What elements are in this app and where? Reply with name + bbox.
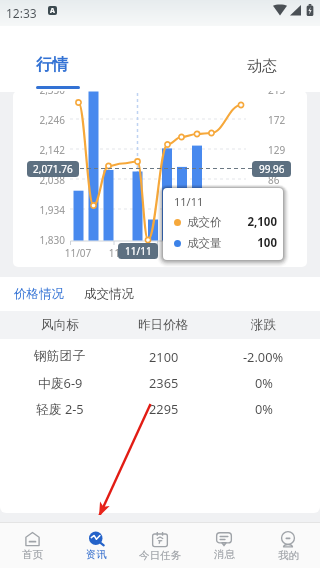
button[interactable]: 今日任务 [128, 523, 192, 568]
staticText: 99.96 [259, 162, 285, 176]
staticText: 资讯 [86, 548, 107, 561]
button[interactable]: 价格情况 [14, 286, 64, 302]
staticText: 轻废 2-5 [36, 400, 84, 417]
other: 消息 [216, 532, 232, 546]
staticText: 0% [255, 400, 273, 417]
staticText: 2365 [149, 374, 179, 391]
staticText: 0% [255, 374, 273, 391]
button[interactable]: 中废6-9 [0, 369, 320, 395]
staticText: 中废6-9 [38, 374, 83, 391]
staticText: 我的 [278, 549, 299, 562]
staticText: 2,142 [25, 143, 65, 157]
staticText: 129 [268, 143, 286, 157]
staticText: 11/11 [125, 244, 152, 258]
staticText: 215 [268, 91, 286, 97]
staticText: 2,246 [25, 113, 65, 127]
staticText: 钢筋团子 [34, 348, 86, 364]
staticText: 1,934 [25, 203, 65, 217]
button[interactable]: 轻废 2-5 [0, 395, 320, 421]
staticText: 2100 [149, 348, 179, 365]
staticText: 2295 [149, 400, 179, 417]
staticText: 100 [223, 235, 277, 251]
button[interactable]: 首页 [0, 523, 64, 568]
staticText: 首页 [22, 548, 43, 561]
staticText: 2,100 [223, 214, 277, 230]
staticText: A [50, 6, 55, 15]
staticText: 涨跌 [251, 317, 277, 333]
staticText: 今日任务 [139, 549, 181, 562]
staticText: 成交量 [187, 236, 222, 250]
staticText: 成交价 [187, 215, 222, 229]
staticText: 动态 [247, 57, 277, 76]
staticText: 2,350 [25, 91, 65, 97]
button[interactable]: 动态 [247, 57, 277, 76]
button[interactable]: 我的 [256, 523, 320, 568]
staticText: 11/11 [174, 194, 204, 209]
other: 资讯 [89, 532, 104, 546]
other: 我的 [281, 532, 295, 547]
other: 首页 [25, 532, 40, 546]
staticText: 消息 [214, 548, 235, 561]
staticText: -2.00% [243, 348, 284, 365]
staticText: 昨日价格 [138, 317, 189, 333]
staticText: 11/07 [60, 246, 96, 260]
staticText: 成交情况 [84, 286, 134, 302]
button[interactable]: 钢筋团子 [0, 343, 320, 369]
staticText: 2,071.76 [33, 162, 73, 176]
button[interactable]: 成交情况 [84, 286, 134, 302]
other: 今日任务 [152, 532, 168, 547]
staticText: 11/09 [104, 246, 140, 260]
button[interactable]: 资讯 [64, 523, 128, 568]
staticText: 86 [268, 173, 280, 187]
button[interactable]: 消息 [192, 523, 256, 568]
staticText: 172 [268, 113, 286, 127]
staticText: 12:33 [6, 5, 37, 21]
staticText: 价格情况 [14, 286, 64, 302]
staticText: 2,038 [25, 173, 65, 187]
staticText: 1,830 [25, 233, 65, 247]
staticText: 风向标 [41, 317, 79, 333]
staticText: 行情 [36, 55, 68, 75]
button[interactable]: 行情 [36, 55, 68, 75]
